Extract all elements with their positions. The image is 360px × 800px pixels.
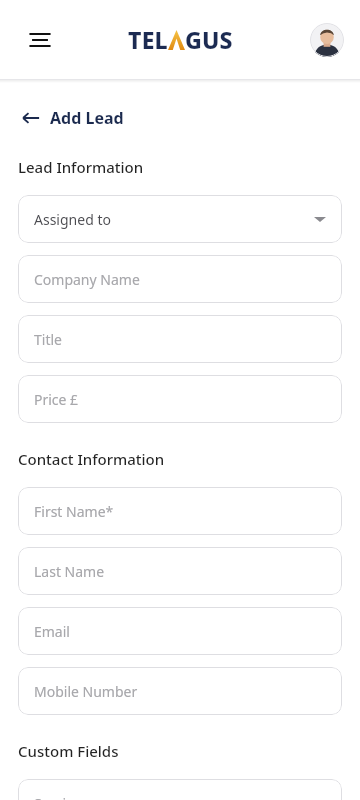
staticText: Assigned to: [34, 210, 111, 229]
button[interactable]: Profile: [310, 23, 344, 57]
staticText: Email: [34, 622, 70, 641]
staticText: Last Name: [34, 562, 105, 581]
button[interactable]: First Name*: [18, 487, 342, 535]
staticText: Lead Information: [18, 157, 144, 177]
staticText: Price £: [34, 390, 79, 409]
button[interactable]: Menu: [18, 18, 62, 62]
staticText: Title: [34, 330, 62, 349]
other: Open dropdown: [314, 213, 326, 225]
staticText: Services: [34, 794, 88, 800]
staticText: Custom Fields: [18, 741, 119, 761]
staticText: Add Lead: [50, 107, 124, 129]
button[interactable]: Back: [18, 103, 128, 133]
other: Back: [22, 109, 40, 127]
button[interactable]: Assigned to: [18, 195, 342, 243]
button[interactable]: Mobile Number: [18, 667, 342, 715]
staticText: Contact Information: [18, 449, 165, 469]
staticText: TEL: [128, 24, 168, 55]
staticText: GUS: [185, 24, 233, 55]
button[interactable]: Services: [18, 779, 342, 800]
staticText: Company Name: [34, 270, 140, 289]
button[interactable]: Title: [18, 315, 342, 363]
button[interactable]: Price £: [18, 375, 342, 423]
button[interactable]: Company Name: [18, 255, 342, 303]
staticText: First Name*: [34, 502, 114, 521]
button[interactable]: Last Name: [18, 547, 342, 595]
staticText: Mobile Number: [34, 682, 138, 701]
button[interactable]: Email: [18, 607, 342, 655]
